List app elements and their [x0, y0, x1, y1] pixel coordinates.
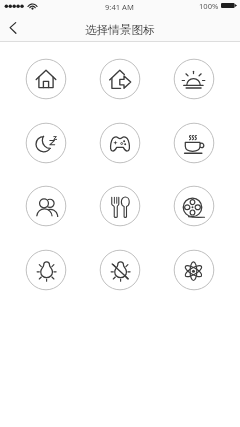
- button[interactable]: Back: [0, 18, 26, 42]
- button[interactable]: Guests: [25, 185, 67, 227]
- button[interactable]: Dining: [99, 185, 141, 227]
- staticText: 9:41 AM: [105, 2, 134, 12]
- button[interactable]: Sunrise: [173, 58, 215, 100]
- button[interactable]: Leave home: [99, 58, 141, 100]
- staticText: 100%: [199, 1, 219, 11]
- button[interactable]: Gaming: [99, 122, 141, 164]
- button[interactable]: Home: [25, 58, 67, 100]
- button[interactable]: Coffee: [173, 122, 215, 164]
- staticText: 选择情景图标: [85, 23, 155, 38]
- button[interactable]: Light off: [99, 249, 141, 291]
- button[interactable]: Movie: [173, 185, 215, 227]
- button[interactable]: Science: [173, 249, 215, 291]
- button[interactable]: Light on: [25, 249, 67, 291]
- button[interactable]: Sleep: [25, 122, 67, 164]
